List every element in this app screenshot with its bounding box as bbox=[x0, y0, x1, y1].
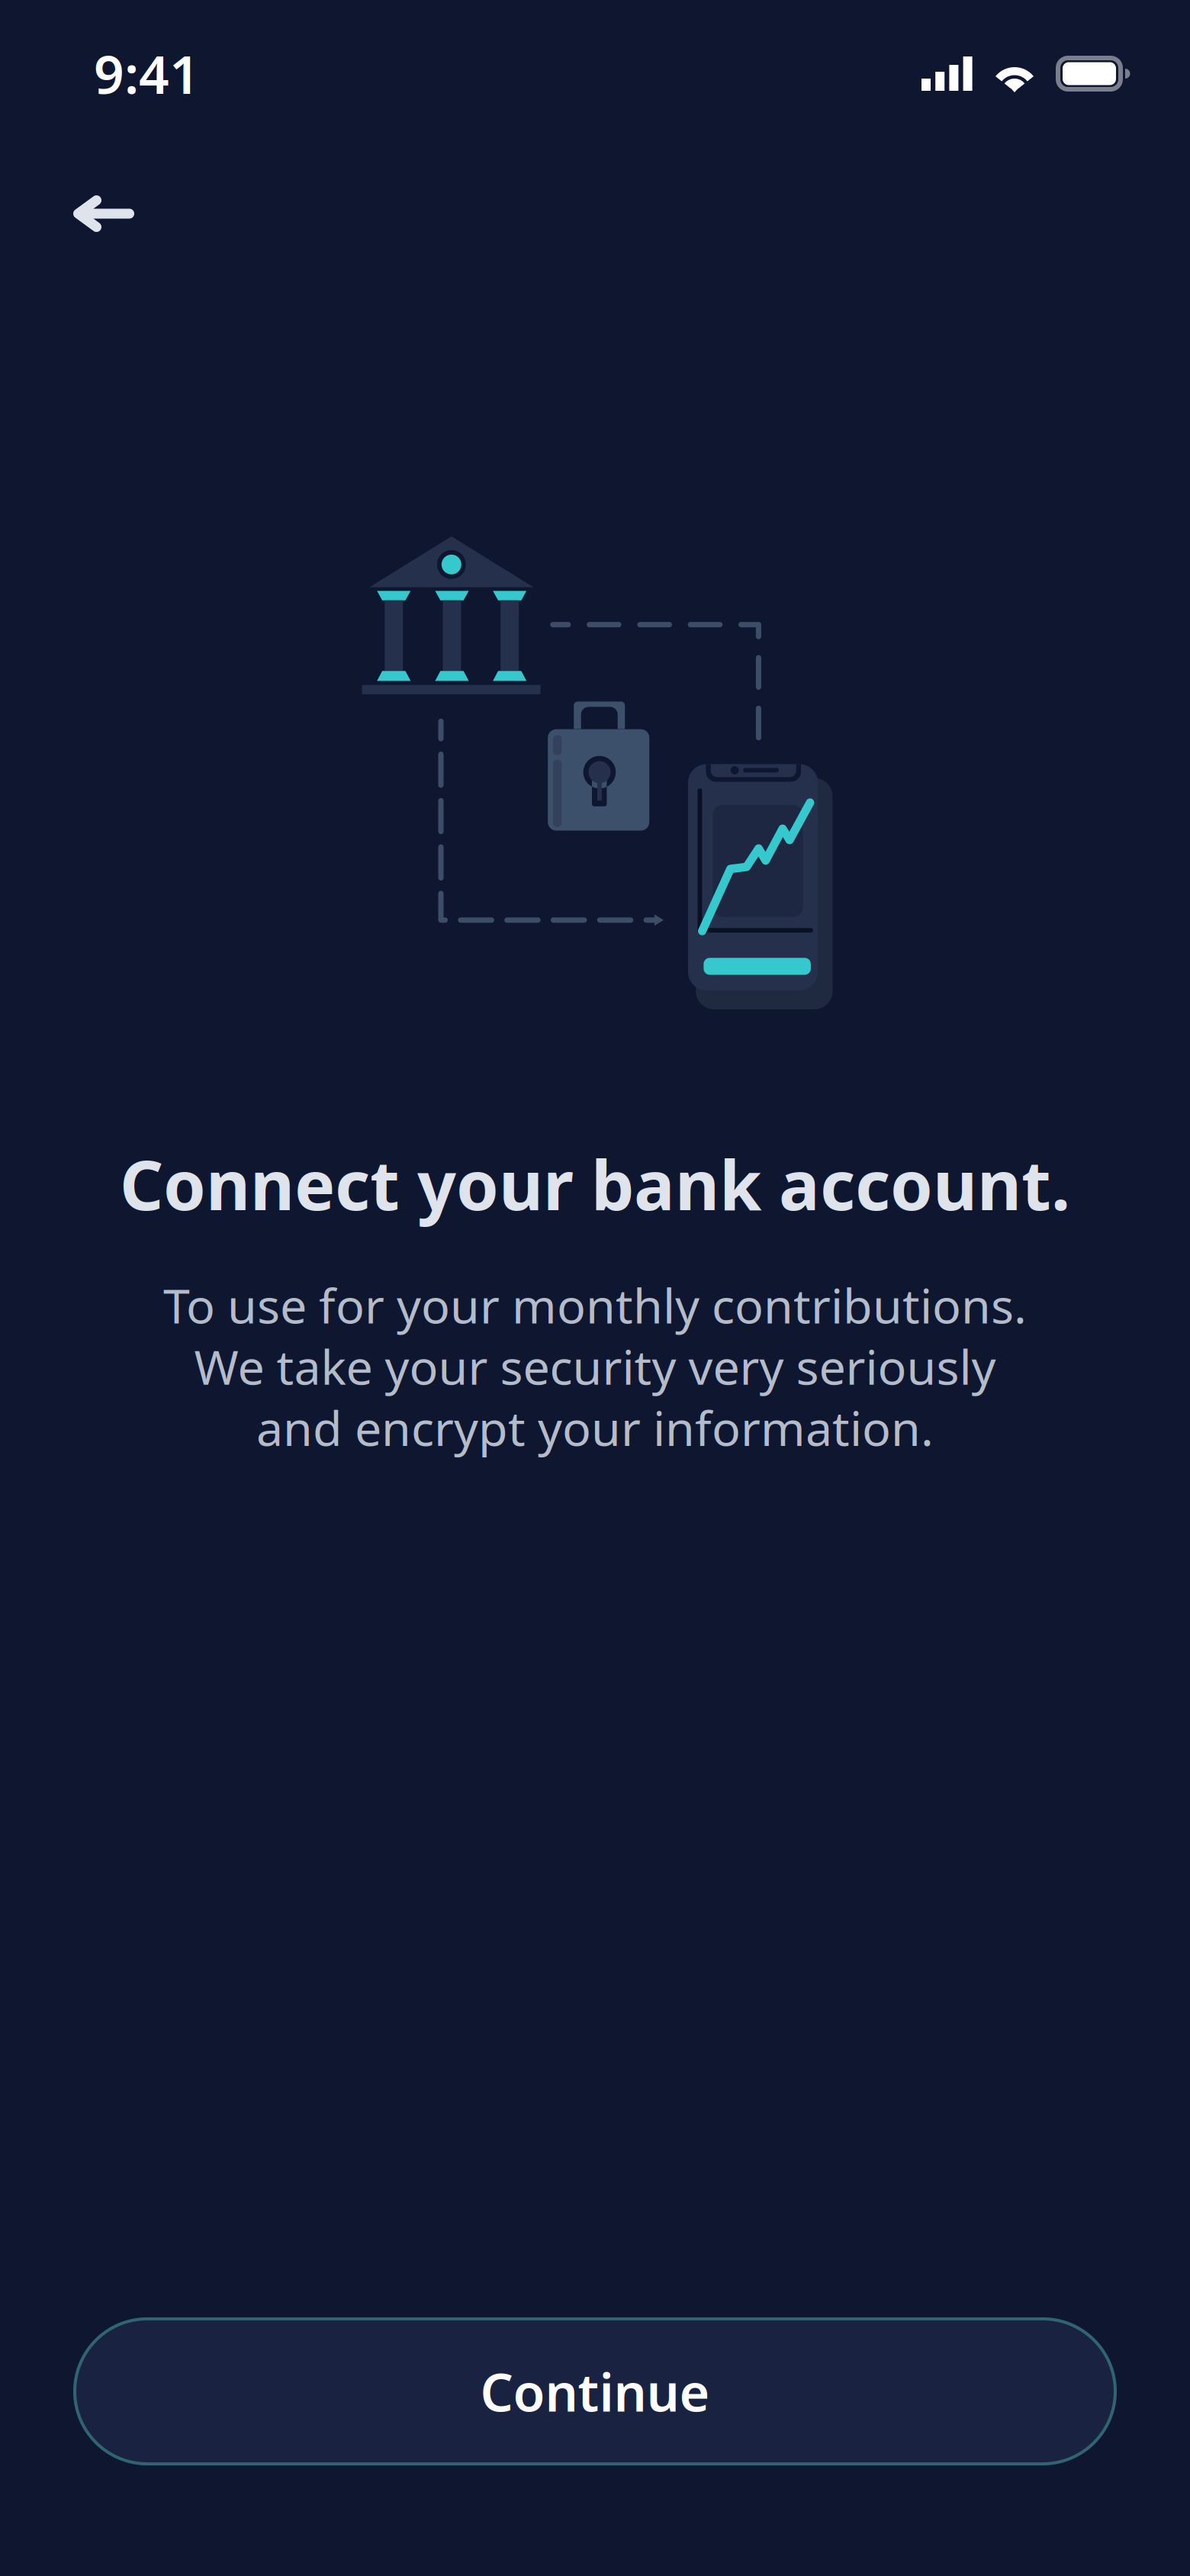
staticText: Connect your bank account. bbox=[120, 1138, 1070, 1229]
staticText: To use for your monthly contributions. bbox=[163, 1273, 1027, 1337]
staticText: and encrypt your information. bbox=[256, 1396, 934, 1459]
staticText: 9:41 bbox=[94, 38, 200, 108]
staticText: Continue bbox=[480, 2357, 710, 2426]
button[interactable]: Continue bbox=[73, 2317, 1117, 2465]
staticText: We take your security very seriously bbox=[194, 1334, 996, 1398]
button[interactable]: Back bbox=[50, 169, 157, 258]
